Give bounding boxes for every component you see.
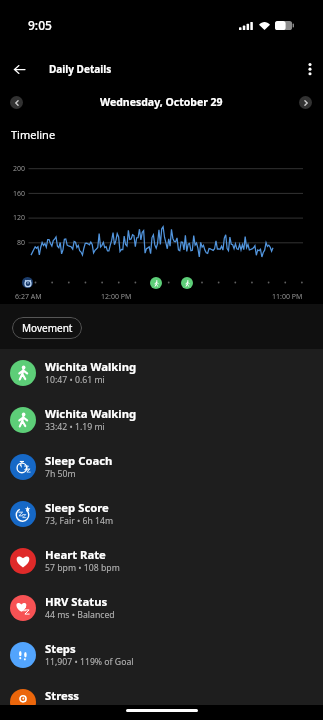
staticText: 33:42 • 1.19 mi	[45, 421, 105, 433]
button[interactable]: Wichita Walking	[0, 396, 323, 443]
staticText: 6:27 AM	[15, 292, 42, 302]
staticText: Movement	[22, 321, 73, 335]
staticText: 80	[17, 238, 26, 248]
staticText: Wichita Walking	[45, 359, 137, 374]
staticText: 11:00 PM	[272, 292, 303, 302]
button[interactable]: Sleep Coach	[0, 443, 323, 490]
button[interactable]: Heart Rate	[0, 537, 323, 584]
button[interactable]: Wichita Walking	[0, 349, 323, 396]
button[interactable]: More options	[296, 55, 323, 83]
button[interactable]: Next day	[299, 96, 312, 109]
staticText: Wednesday, October 29	[100, 95, 223, 109]
staticText: 10:47 • 0.61 mi	[45, 374, 105, 386]
staticText: 120	[13, 213, 26, 223]
staticText: 57 bpm • 108 bpm	[45, 562, 120, 574]
staticText: 200	[13, 164, 26, 174]
staticText: Timeline	[11, 127, 56, 142]
staticText: 9:05	[28, 17, 52, 33]
staticText: 73, Fair • 6h 14m	[45, 515, 114, 527]
button[interactable]: Stress	[0, 678, 323, 705]
staticText: Steps	[45, 641, 76, 656]
button[interactable]: Sleep Score	[0, 490, 323, 537]
staticText: 44 ms • Balanced	[45, 609, 115, 621]
button[interactable]: HRV Status	[0, 584, 323, 631]
button[interactable]: Previous day	[10, 96, 23, 109]
staticText: 11,907 • 119% of Goal	[45, 656, 134, 668]
staticText: Sleep Score	[45, 500, 109, 515]
staticText: Sleep Coach	[45, 453, 113, 468]
staticText: Daily Details	[49, 62, 112, 76]
staticText: Stress	[45, 688, 80, 703]
button[interactable]: Steps	[0, 631, 323, 678]
staticText: 12:00 PM	[101, 292, 132, 302]
button[interactable]: Back	[3, 53, 35, 85]
staticText: HRV Status	[45, 594, 108, 609]
staticText: 160	[13, 189, 26, 199]
staticText: Heart Rate	[45, 547, 106, 562]
staticText: Wichita Walking	[45, 406, 137, 421]
button[interactable]: Movement	[12, 317, 82, 339]
staticText: 7h 50m	[45, 468, 76, 480]
